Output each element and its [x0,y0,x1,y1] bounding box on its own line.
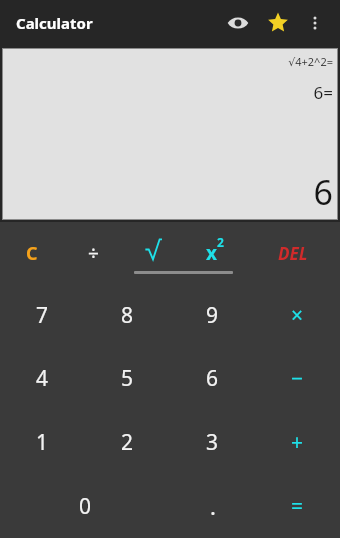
staticText: 7 [36,301,49,330]
button[interactable]: 5 [85,347,170,410]
button[interactable]: 0 [0,474,170,538]
staticText: DEL [278,242,308,265]
button[interactable]: 2 [85,410,170,474]
button[interactable]: 7 [0,284,85,347]
button[interactable]: . [170,474,255,538]
button[interactable]: Favorite [258,3,298,43]
staticText: √4+2^2= [288,54,333,69]
staticText: 2 [121,428,134,457]
staticText: x [206,240,217,266]
button[interactable]: = [255,474,340,538]
staticText: 9 [206,301,219,330]
staticText: 6 [206,364,219,393]
staticText: C [26,241,38,266]
button[interactable]: 9 [170,284,255,347]
staticText: 1 [36,428,49,457]
staticText: = [291,492,304,521]
staticText: Calculator [16,13,93,33]
button[interactable]: Preview [218,3,258,43]
staticText: 5 [121,364,134,393]
staticText: ÷ [88,240,99,266]
button[interactable]: 6 [170,347,255,410]
staticText: . [210,491,216,521]
button[interactable]: 4 [0,347,85,410]
button[interactable]: ÷ [63,222,123,284]
button[interactable]: 3 [170,410,255,474]
button[interactable]: Square [184,222,245,284]
staticText: 2 [217,234,224,250]
button[interactable]: Square root [123,222,184,284]
staticText: 6= [313,81,333,104]
staticText: 3 [206,428,219,457]
staticText: 0 [79,492,92,521]
button[interactable]: 8 [85,284,170,347]
button[interactable]: + [255,410,340,474]
staticText: + [291,428,304,457]
staticText: 6 [313,169,333,215]
button[interactable]: More options [298,6,332,40]
staticText: − [291,364,304,393]
button[interactable]: × [255,284,340,347]
button[interactable]: DEL [245,222,340,284]
staticText: × [291,301,304,330]
button[interactable]: 1 [0,410,85,474]
button[interactable]: − [255,347,340,410]
button[interactable]: C [0,222,63,284]
staticText: 8 [121,301,134,330]
staticText: 4 [36,364,49,393]
